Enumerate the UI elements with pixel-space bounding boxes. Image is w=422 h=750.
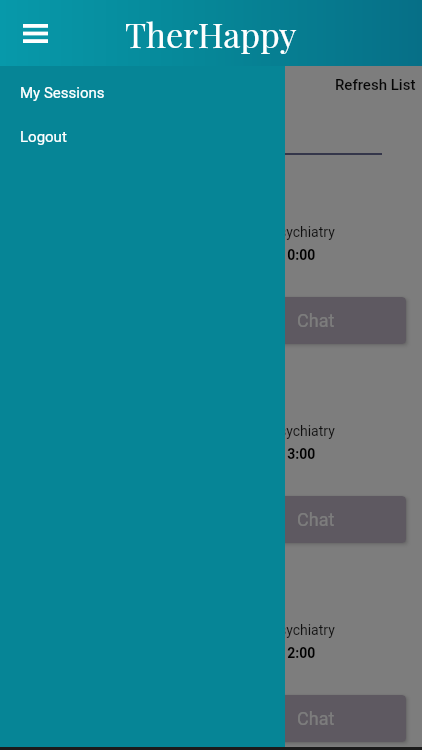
- button[interactable]: Open navigation drawer: [2, 2, 68, 64]
- staticText: Dr. Jonathan Mercer - Specialization in …: [28, 224, 335, 240]
- staticText: Scheduled appointment: 2024-06-14 at 13:…: [28, 446, 316, 462]
- button[interactable]: Chat: [26, 297, 406, 344]
- button[interactable]: Refresh List: [335, 66, 416, 104]
- staticText: Refresh List: [335, 76, 416, 94]
- button[interactable]: My Sessions: [0, 71, 285, 115]
- button[interactable]: Chat: [26, 496, 406, 543]
- staticText: Scheduled appointment: 2024-06-11 at 10:…: [28, 247, 316, 263]
- staticText: Logout: [20, 128, 67, 146]
- staticText: Scheduled appointment: 2024-06-18 at 12:…: [28, 645, 316, 661]
- button[interactable]: Close navigation drawer: [0, 66, 422, 750]
- button[interactable]: Dr. Jonathan Mercer - Specialization in …: [26, 423, 406, 608]
- button[interactable]: Dr. Jonathan Mercer - Specialization in …: [26, 224, 406, 409]
- button[interactable]: Logout: [0, 115, 285, 159]
- staticText: Dr. Jonathan Mercer - Specialization in …: [28, 423, 335, 439]
- staticText: Chat: [297, 310, 335, 331]
- staticText: My Sessions: [20, 84, 105, 102]
- button[interactable]: Chat: [26, 695, 406, 742]
- button[interactable]: Dr. Jonathan Mercer - Specialization in …: [26, 622, 406, 750]
- staticText: Chat: [297, 708, 335, 729]
- staticText: Chat: [297, 509, 335, 530]
- staticText: Dr. Jonathan Mercer - Specialization in …: [28, 622, 335, 638]
- staticText: TherHappy: [125, 11, 297, 56]
